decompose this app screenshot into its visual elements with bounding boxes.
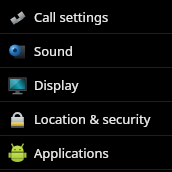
- button[interactable]: Display: [0, 68, 172, 102]
- button[interactable]: Call settings: [0, 0, 172, 34]
- staticText: Sound: [34, 42, 74, 60]
- button[interactable]: Applications: [0, 136, 172, 170]
- other: Display: [7, 75, 28, 96]
- staticText: Location & security: [34, 110, 151, 128]
- staticText: Applications: [34, 144, 109, 162]
- staticText: Display: [34, 76, 79, 94]
- button[interactable]: Sound: [0, 34, 172, 68]
- other: Sound: [7, 41, 28, 62]
- staticText: Call settings: [34, 8, 109, 26]
- other: Location and security: [7, 109, 28, 130]
- other: Call settings: [7, 7, 28, 28]
- other: Applications: [7, 143, 28, 164]
- button[interactable]: Location and security: [0, 102, 172, 136]
